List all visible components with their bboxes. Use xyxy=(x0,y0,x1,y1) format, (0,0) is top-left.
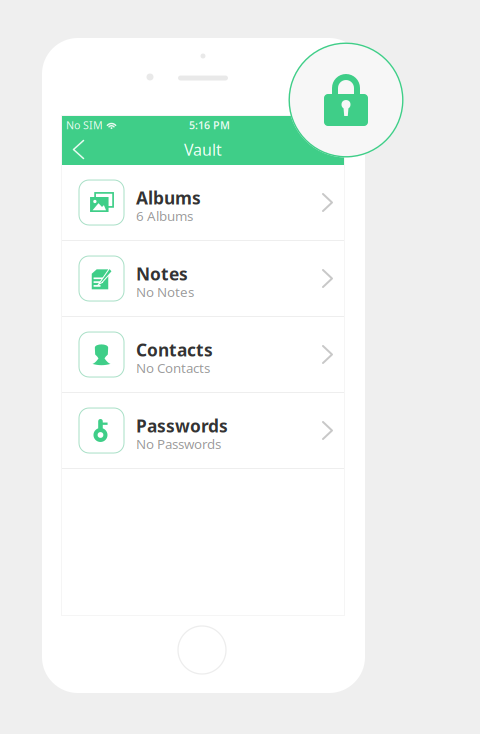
button[interactable]: Contacts xyxy=(62,317,344,392)
staticText: Passwords xyxy=(136,414,228,437)
staticText: 6 Albums xyxy=(136,207,193,225)
staticText: Vault xyxy=(184,139,222,160)
button[interactable]: Notes xyxy=(62,241,344,316)
staticText: Contacts xyxy=(136,338,213,361)
staticText: No Notes xyxy=(136,283,194,301)
staticText: No Passwords xyxy=(136,435,221,453)
button[interactable]: Passwords xyxy=(62,393,344,468)
staticText: Albums xyxy=(136,186,201,209)
staticText: 5:16 PM xyxy=(189,118,230,132)
button[interactable]: Back xyxy=(62,134,97,164)
staticText: Notes xyxy=(136,262,188,285)
staticText: No SIM xyxy=(66,118,103,132)
staticText: No Contacts xyxy=(136,359,210,377)
button[interactable]: Albums xyxy=(62,165,344,240)
